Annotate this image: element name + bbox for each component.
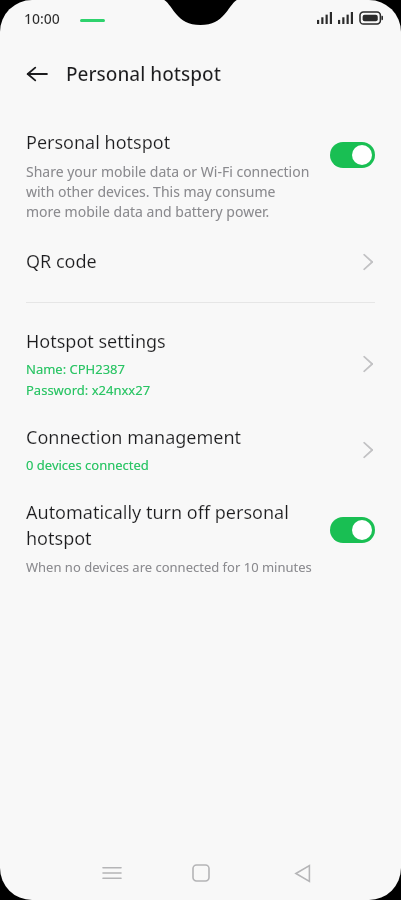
staticText: Personal hotspot: [26, 130, 171, 155]
staticText: Personal hotspot: [66, 61, 221, 87]
button[interactable]: Back: [280, 851, 324, 895]
staticText: 10:00: [24, 9, 60, 28]
button[interactable]: Toggle: [330, 517, 375, 543]
button[interactable]: Hotspot settings: [0, 329, 401, 399]
staticText: QR code: [26, 249, 361, 274]
staticText: Connection management: [26, 425, 242, 450]
button[interactable]: Recent apps: [90, 851, 134, 895]
staticText: Share your mobile data or Wi-Fi connecti…: [26, 162, 312, 221]
button[interactable]: Personal hotspot: [0, 128, 401, 223]
button[interactable]: Connection management: [0, 425, 401, 474]
staticText: Password: x24nxx27: [26, 381, 151, 399]
staticText: Hotspot settings: [26, 329, 166, 354]
button[interactable]: Back: [14, 52, 60, 96]
staticText: Name: CPH2387: [26, 360, 125, 378]
button[interactable]: QR code: [0, 249, 401, 274]
button[interactable]: Toggle: [330, 142, 375, 168]
staticText: When no devices are connected for 10 min…: [26, 558, 312, 576]
staticText: 0 devices connected: [26, 456, 149, 474]
button[interactable]: Automatically turn off personal hotspot: [0, 500, 401, 576]
button[interactable]: Home: [179, 851, 223, 895]
staticText: Automatically turn off personal hotspot: [26, 500, 312, 550]
